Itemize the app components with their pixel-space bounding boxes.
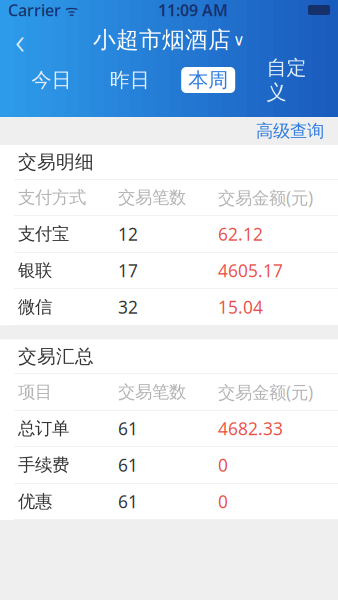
staticText: 本周 xyxy=(188,68,228,92)
staticText: 0 xyxy=(218,453,228,476)
staticText: ∨ xyxy=(233,31,245,49)
staticText: 32 xyxy=(118,295,138,318)
staticText: 交易汇总 xyxy=(18,345,94,368)
staticText: 12 xyxy=(118,222,138,245)
staticText: 今日 xyxy=(31,68,71,92)
button[interactable]: 高级查询 xyxy=(242,115,338,147)
staticText: 高级查询 xyxy=(256,120,324,142)
button[interactable]: 今日 xyxy=(24,67,78,93)
staticText: 昨日 xyxy=(110,68,150,92)
staticText: 4682.33 xyxy=(218,417,283,440)
staticText: 62.12 xyxy=(218,222,263,245)
staticText: 银联 xyxy=(18,260,52,281)
staticText: 61 xyxy=(118,453,138,476)
button[interactable]: Back xyxy=(0,20,40,60)
staticText: 总订单 xyxy=(18,418,69,439)
button[interactable]: 自定义 xyxy=(260,67,314,93)
staticText: 交易笔数 xyxy=(118,381,186,403)
staticText: 微信 xyxy=(18,296,52,318)
staticText: 项目 xyxy=(18,381,52,403)
staticText: 手续费 xyxy=(18,454,69,476)
button[interactable]: 本周 xyxy=(181,67,235,93)
staticText: Carrier xyxy=(8,0,61,21)
staticText: 自定义 xyxy=(267,55,307,104)
staticText: ‹ xyxy=(15,15,25,65)
staticText: 交易金额(元) xyxy=(218,380,313,403)
button[interactable]: 昨日 xyxy=(103,67,157,93)
staticText: 0 xyxy=(218,490,228,513)
staticText: 17 xyxy=(118,259,138,282)
staticText: 交易笔数 xyxy=(118,187,186,208)
button[interactable]: 小超市烟酒店 xyxy=(93,26,245,54)
staticText: 61 xyxy=(118,490,138,513)
staticText: 11:09 AM xyxy=(158,0,228,21)
staticText: 15.04 xyxy=(218,295,263,318)
staticText: 4605.17 xyxy=(218,259,283,282)
staticText: 支付宝 xyxy=(18,223,69,245)
staticText: 优惠 xyxy=(18,491,52,512)
staticText: 交易明细 xyxy=(18,150,94,173)
staticText: ᯤ xyxy=(61,0,78,20)
staticText: 小超市烟酒店 xyxy=(93,26,231,54)
staticText: 支付方式 xyxy=(18,187,86,208)
staticText: 交易金额(元) xyxy=(218,186,313,209)
staticText: 61 xyxy=(118,417,138,440)
